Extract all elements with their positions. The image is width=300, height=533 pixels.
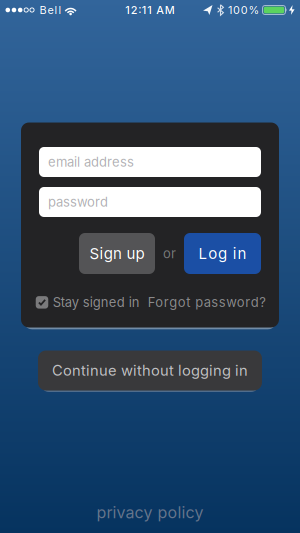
button[interactable]: Sign up (79, 233, 155, 274)
button[interactable]: password (39, 187, 261, 217)
staticText: email address (48, 154, 134, 170)
button[interactable]: Stay signed in (36, 294, 140, 310)
staticText: Bell (40, 3, 62, 17)
staticText: 100% (228, 3, 259, 17)
staticText: or (163, 246, 176, 261)
staticText: Stay signed in (53, 294, 140, 310)
button[interactable]: email address (39, 147, 261, 177)
staticText: password (48, 194, 108, 210)
staticText: Forgot password? (148, 294, 266, 310)
staticText: Continue without logging in (52, 362, 248, 379)
staticText: Sign up (89, 244, 145, 263)
button[interactable]: Continue without logging in (38, 350, 262, 390)
staticText: 12:11 AM (125, 3, 175, 17)
button[interactable]: Forgot password? (148, 294, 266, 310)
button[interactable]: privacy policy (96, 503, 203, 522)
staticText: Log in (198, 244, 246, 263)
staticText: privacy policy (96, 503, 203, 522)
button[interactable]: Log in (184, 233, 261, 274)
